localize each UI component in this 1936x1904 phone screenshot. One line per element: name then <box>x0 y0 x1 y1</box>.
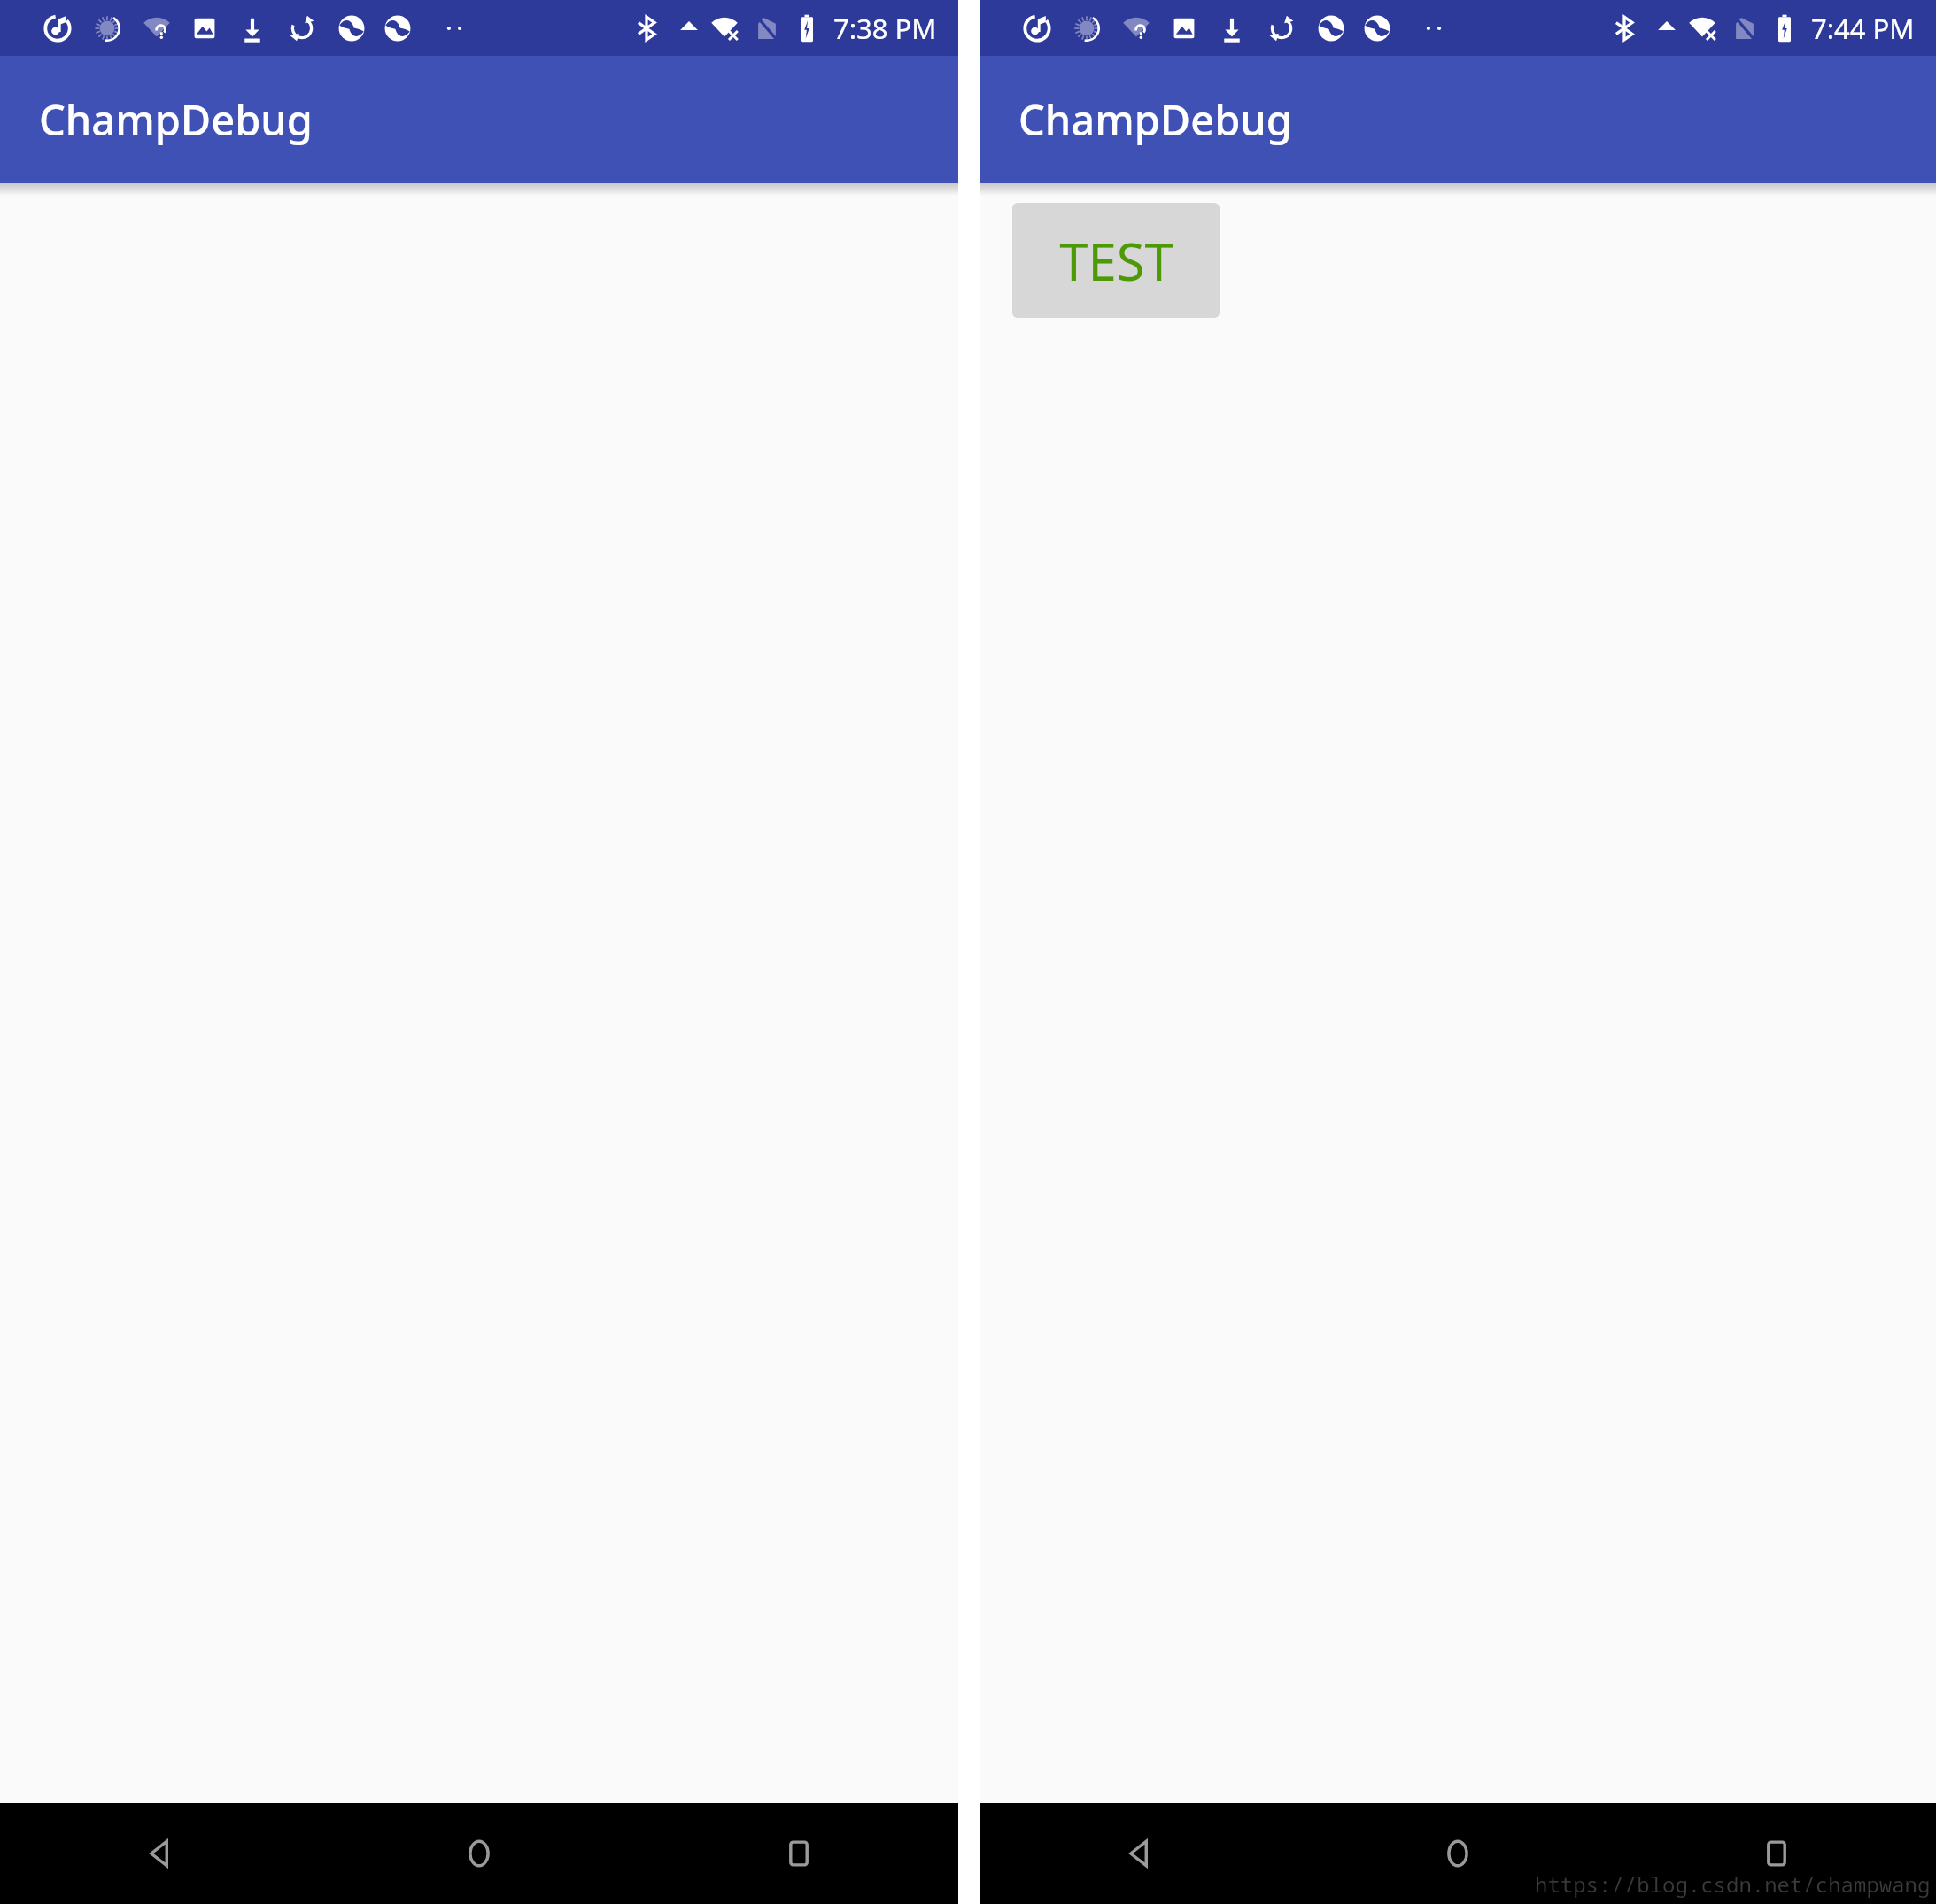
staticText: ChampDebug <box>39 91 313 148</box>
button[interactable]: Back <box>0 1803 319 1904</box>
staticText: 7:38 PM <box>833 10 937 47</box>
staticText: TEST <box>1059 226 1173 296</box>
button[interactable]: Recent apps <box>1617 1803 1936 1904</box>
button[interactable]: TEST <box>1012 203 1220 318</box>
staticText: https://blog.csdn.net/champwang <box>1535 1869 1931 1899</box>
staticText: 7:44 PM <box>1811 10 1915 47</box>
staticText: ChampDebug <box>1018 91 1292 148</box>
button[interactable]: Back <box>980 1803 1298 1904</box>
button[interactable]: Home <box>319 1803 639 1904</box>
button[interactable]: Recent apps <box>639 1803 958 1904</box>
button[interactable]: Home <box>1298 1803 1617 1904</box>
